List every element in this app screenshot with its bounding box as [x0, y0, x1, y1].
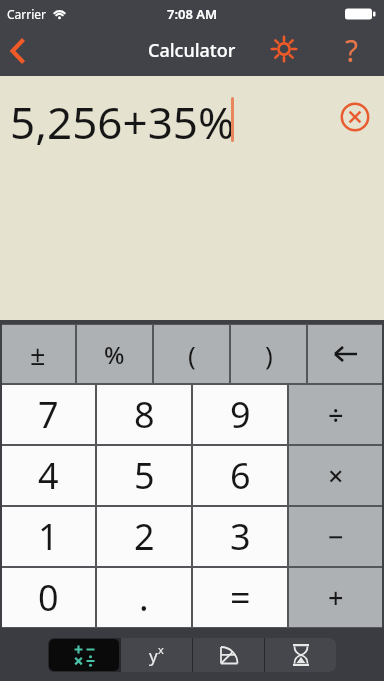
button[interactable]: =: [193, 568, 287, 627]
staticText: .: [139, 573, 149, 622]
button[interactable]: 0: [1, 568, 95, 627]
staticText: 6: [230, 451, 251, 500]
button[interactable]: ×: [289, 446, 383, 505]
staticText: 5,256+35%: [10, 92, 235, 152]
staticText: 3: [230, 512, 251, 561]
button[interactable]: 6: [193, 446, 287, 505]
staticText: 1: [38, 512, 59, 561]
button[interactable]: ÷: [289, 385, 383, 444]
staticText: 9: [230, 390, 251, 439]
staticText: 7: [38, 390, 59, 439]
button[interactable]: [49, 639, 119, 671]
staticText: 2: [134, 512, 155, 561]
button[interactable]: .: [97, 568, 191, 627]
button[interactable]: (: [154, 325, 229, 383]
staticText: 7:08 AM: [167, 5, 218, 23]
staticText: ×: [328, 457, 344, 494]
staticText: %: [104, 338, 125, 371]
button[interactable]: ): [231, 325, 306, 383]
staticText: x: [158, 642, 164, 657]
staticText: 5: [134, 451, 155, 500]
button[interactable]: ?: [332, 26, 372, 74]
button[interactable]: 9: [193, 385, 287, 444]
button[interactable]: ±: [1, 325, 75, 383]
staticText: 8: [134, 390, 155, 439]
button[interactable]: 7: [1, 385, 95, 444]
staticText: ?: [345, 30, 359, 71]
staticText: =: [230, 573, 251, 622]
button[interactable]: [338, 100, 371, 133]
button[interactable]: +: [289, 568, 383, 627]
button[interactable]: [265, 638, 336, 672]
staticText: (: [188, 337, 196, 372]
button[interactable]: 2: [97, 507, 191, 566]
button[interactable]: [262, 25, 306, 73]
staticText: 4: [38, 451, 59, 500]
staticText: ±: [30, 336, 46, 373]
staticText: −: [328, 518, 344, 555]
staticText: +: [328, 579, 344, 616]
staticText: ÷: [328, 396, 344, 433]
staticText: 0: [38, 573, 59, 622]
staticText: y: [149, 644, 158, 667]
staticText: Calculator: [148, 38, 236, 63]
staticText: Carrier: [7, 6, 47, 22]
button[interactable]: 5: [97, 446, 191, 505]
staticText: ): [265, 337, 273, 372]
button[interactable]: 4: [1, 446, 95, 505]
button[interactable]: y: [121, 638, 192, 672]
button[interactable]: [193, 638, 264, 672]
button[interactable]: [0, 27, 36, 75]
button[interactable]: 3: [193, 507, 287, 566]
button[interactable]: −: [289, 507, 383, 566]
button[interactable]: 8: [97, 385, 191, 444]
button[interactable]: [308, 325, 383, 383]
button[interactable]: %: [77, 325, 152, 383]
button[interactable]: 1: [1, 507, 95, 566]
